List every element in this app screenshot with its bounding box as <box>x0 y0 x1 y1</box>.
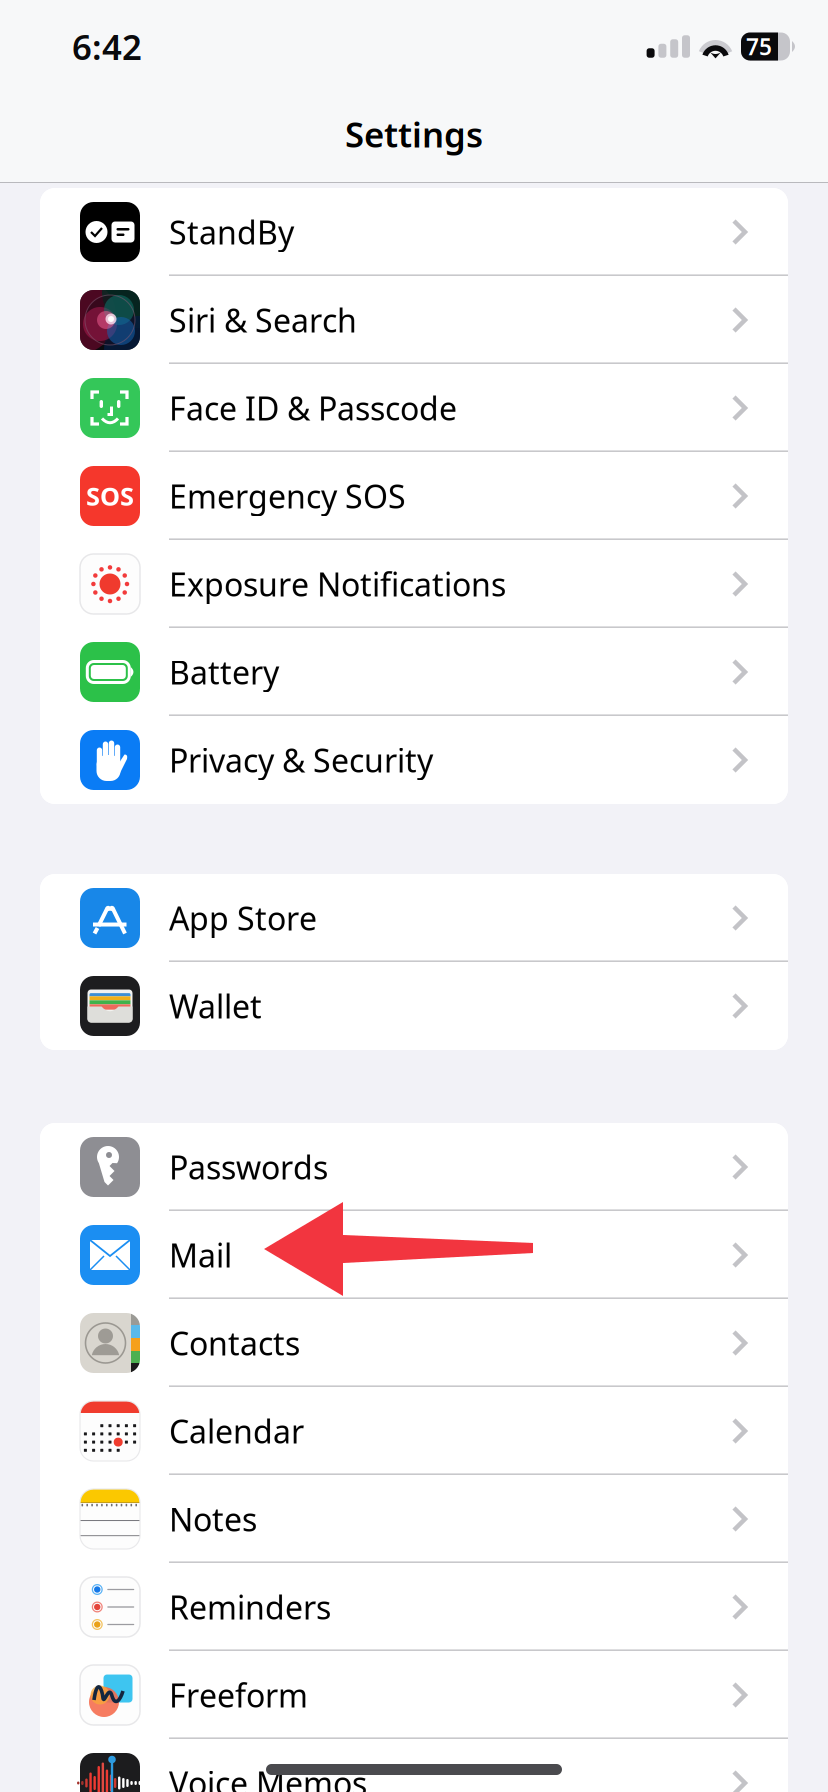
staticText: Battery <box>169 651 279 693</box>
button[interactable]: Passwords <box>40 1123 788 1211</box>
staticText: Voice Memos <box>169 1762 367 1792</box>
staticText: App Store <box>169 897 317 939</box>
staticText: 6:42 <box>72 23 142 69</box>
button[interactable]: App Store <box>40 874 788 962</box>
staticText: Siri & Search <box>169 299 357 341</box>
button[interactable]: Battery <box>40 628 788 716</box>
staticText: Notes <box>169 1498 257 1540</box>
button[interactable]: Exposure Notifications <box>40 540 788 628</box>
button[interactable]: Reminders <box>40 1563 788 1651</box>
button[interactable]: Face ID & Passcode <box>40 364 788 452</box>
button[interactable]: Wallet <box>40 962 788 1050</box>
staticText: 75 <box>746 31 772 61</box>
staticText: Reminders <box>169 1586 331 1628</box>
button[interactable]: Calendar <box>40 1387 788 1475</box>
staticText: Freeform <box>169 1674 308 1716</box>
staticText: StandBy <box>169 211 294 253</box>
button[interactable]: Freeform <box>40 1651 788 1739</box>
staticText: Emergency SOS <box>169 475 406 517</box>
button[interactable]: Notes <box>40 1475 788 1563</box>
button[interactable]: Privacy & Security <box>40 716 788 804</box>
button[interactable]: Siri & Search <box>40 276 788 364</box>
button[interactable]: Mail <box>40 1211 788 1299</box>
staticText: Mail <box>169 1234 232 1276</box>
staticText: Settings <box>345 111 483 157</box>
staticText: Calendar <box>169 1410 304 1452</box>
staticText: Exposure Notifications <box>169 563 506 605</box>
button[interactable]: StandBy <box>40 188 788 276</box>
staticText: Contacts <box>169 1322 300 1364</box>
staticText: Privacy & Security <box>169 739 433 781</box>
staticText: Passwords <box>169 1146 328 1188</box>
button[interactable]: Voice Memos <box>40 1739 788 1792</box>
staticText: SOS <box>86 479 134 513</box>
staticText: Face ID & Passcode <box>169 387 457 429</box>
button[interactable]: SOS <box>40 452 788 540</box>
staticText: Wallet <box>169 985 262 1027</box>
button[interactable]: Contacts <box>40 1299 788 1387</box>
